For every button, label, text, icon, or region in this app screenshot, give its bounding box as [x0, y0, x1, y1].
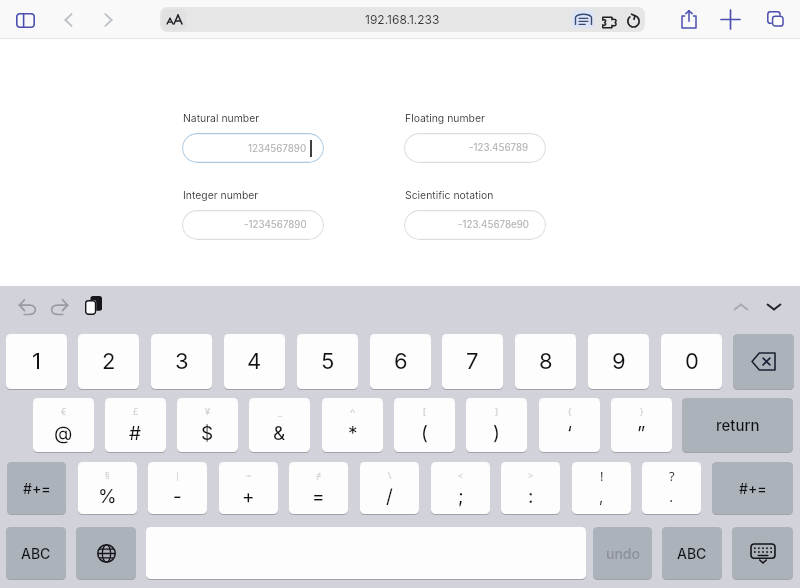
- staticText: ABC: [21, 545, 51, 562]
- button[interactable]: ?: [642, 462, 701, 514]
- button[interactable]: Share: [677, 7, 701, 31]
- staticText: ^: [350, 405, 356, 417]
- button[interactable]: ¥: [177, 398, 238, 452]
- staticText: 5: [321, 348, 335, 375]
- button[interactable]: \: [360, 462, 419, 514]
- button[interactable]: <: [431, 462, 490, 514]
- button[interactable]: #+=: [7, 462, 66, 514]
- staticText: .: [669, 487, 674, 505]
- staticText: 9: [612, 348, 626, 375]
- button[interactable]: Next field: [761, 294, 787, 320]
- staticText: #+=: [739, 480, 767, 497]
- button[interactable]: -1234567890: [182, 210, 324, 240]
- staticText: ‘: [567, 422, 572, 445]
- button[interactable]: _: [249, 398, 310, 452]
- button[interactable]: 2: [78, 334, 139, 389]
- staticText: $: [201, 422, 214, 445]
- button[interactable]: Reader: [572, 10, 594, 28]
- button[interactable]: ABC: [662, 527, 722, 579]
- staticText: ≠: [316, 469, 322, 481]
- button[interactable]: |: [148, 462, 207, 514]
- button[interactable]: Reload: [624, 11, 643, 30]
- button[interactable]: ]: [466, 398, 527, 452]
- button[interactable]: Switch keyboard: [76, 527, 136, 579]
- staticText: return: [716, 416, 760, 434]
- staticText: 1: [32, 348, 41, 375]
- button[interactable]: Extensions: [600, 12, 620, 32]
- staticText: _: [278, 405, 282, 417]
- button[interactable]: Redo: [46, 293, 72, 319]
- button[interactable]: #+=: [712, 462, 793, 514]
- button[interactable]: New tab: [718, 7, 742, 31]
- button[interactable]: §: [78, 462, 137, 514]
- button[interactable]: 4: [224, 334, 285, 389]
- staticText: Natural number: [183, 112, 260, 125]
- staticText: §: [105, 469, 110, 481]
- staticText: ABC: [677, 545, 707, 562]
- button[interactable]: 6: [370, 334, 431, 389]
- button[interactable]: Show sidebar: [13, 10, 37, 30]
- staticText: 8: [539, 348, 553, 375]
- button[interactable]: ≠: [289, 462, 348, 514]
- button[interactable]: [: [394, 398, 455, 452]
- button[interactable]: -123.45678e90: [404, 210, 546, 240]
- button[interactable]: Undo: [14, 293, 40, 319]
- staticText: ~: [246, 469, 252, 481]
- button[interactable]: return: [682, 398, 793, 452]
- button[interactable]: !: [572, 462, 631, 514]
- staticText: }: [640, 405, 644, 417]
- button[interactable]: Previous field: [728, 294, 754, 320]
- staticText: (: [421, 422, 428, 445]
- staticText: 2: [102, 348, 116, 375]
- button[interactable]: ~: [219, 462, 278, 514]
- button[interactable]: 7: [442, 334, 503, 389]
- staticText: %: [98, 485, 117, 508]
- staticText: =: [312, 485, 325, 508]
- button[interactable]: 9: [588, 334, 649, 389]
- button[interactable]: Hide keyboard: [732, 527, 793, 579]
- staticText: -123.45678e90: [458, 219, 529, 231]
- staticText: ?: [669, 467, 675, 485]
- button[interactable]: undo: [593, 527, 652, 579]
- button[interactable]: 5: [297, 334, 358, 389]
- staticText: ”: [637, 422, 646, 445]
- button[interactable]: €: [33, 398, 94, 452]
- button[interactable]: Paste: [81, 293, 105, 317]
- button[interactable]: {: [539, 398, 600, 452]
- button[interactable]: Forward: [96, 8, 120, 32]
- staticText: Scientific notation: [405, 189, 494, 202]
- staticText: <: [458, 469, 464, 481]
- staticText: ]: [495, 405, 498, 417]
- button[interactable]: Back: [56, 8, 80, 32]
- staticText: \: [388, 469, 392, 481]
- button[interactable]: -123.456789: [404, 133, 546, 163]
- button[interactable]: Text size: [162, 9, 186, 30]
- staticText: *: [348, 422, 358, 445]
- button[interactable]: Tabs: [763, 7, 787, 31]
- staticText: #: [129, 422, 142, 445]
- staticText: undo: [606, 545, 640, 562]
- staticText: -: [173, 485, 182, 508]
- staticText: +: [242, 485, 255, 508]
- staticText: @: [54, 422, 73, 445]
- button[interactable]: 192.168.1.233: [160, 7, 645, 32]
- button[interactable]: 1234567890: [182, 133, 324, 163]
- button[interactable]: ABC: [6, 527, 66, 579]
- button[interactable]: }: [611, 398, 672, 452]
- staticText: ;: [458, 485, 464, 508]
- button[interactable]: 8: [515, 334, 576, 389]
- staticText: |: [175, 469, 180, 481]
- staticText: -123.456789: [469, 142, 529, 154]
- staticText: :: [528, 485, 534, 508]
- button[interactable]: £: [105, 398, 166, 452]
- staticText: ): [493, 422, 500, 445]
- staticText: £: [133, 405, 139, 417]
- staticText: -1234567890: [244, 219, 307, 231]
- button[interactable]: 1: [6, 334, 67, 389]
- button[interactable]: >: [501, 462, 560, 514]
- button[interactable]: 3: [151, 334, 212, 389]
- button[interactable]: ^: [322, 398, 383, 452]
- button[interactable]: 0: [661, 334, 722, 389]
- button[interactable]: Backspace: [733, 334, 794, 389]
